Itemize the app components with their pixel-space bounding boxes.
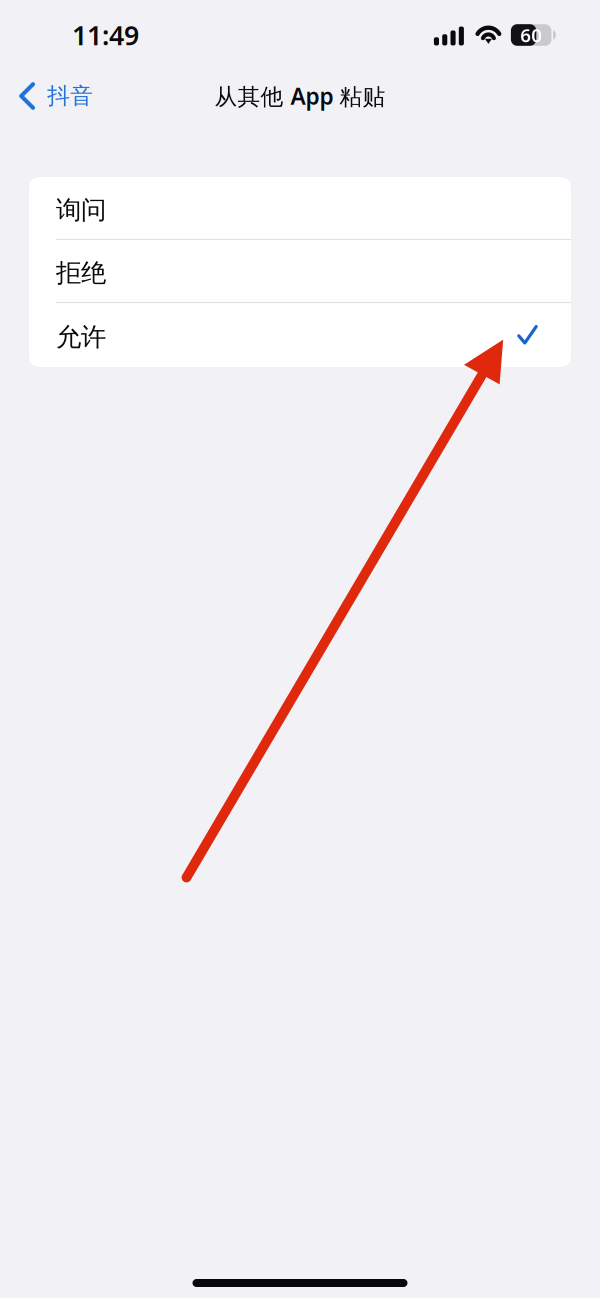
button[interactable]: 拒绝 bbox=[29, 240, 571, 302]
button[interactable]: 抖音 bbox=[0, 70, 107, 122]
staticText: 允许 bbox=[56, 321, 106, 352]
button[interactable]: 询问 bbox=[29, 177, 571, 239]
button[interactable]: 允许 bbox=[29, 303, 571, 367]
staticText: 抖音 bbox=[47, 82, 93, 110]
staticText: 拒绝 bbox=[56, 257, 106, 288]
staticText: 询问 bbox=[56, 194, 106, 225]
staticText: 从其他 App 粘贴 bbox=[214, 81, 385, 111]
staticText: 60 bbox=[520, 23, 542, 47]
staticText: 11:49 bbox=[72, 17, 139, 53]
